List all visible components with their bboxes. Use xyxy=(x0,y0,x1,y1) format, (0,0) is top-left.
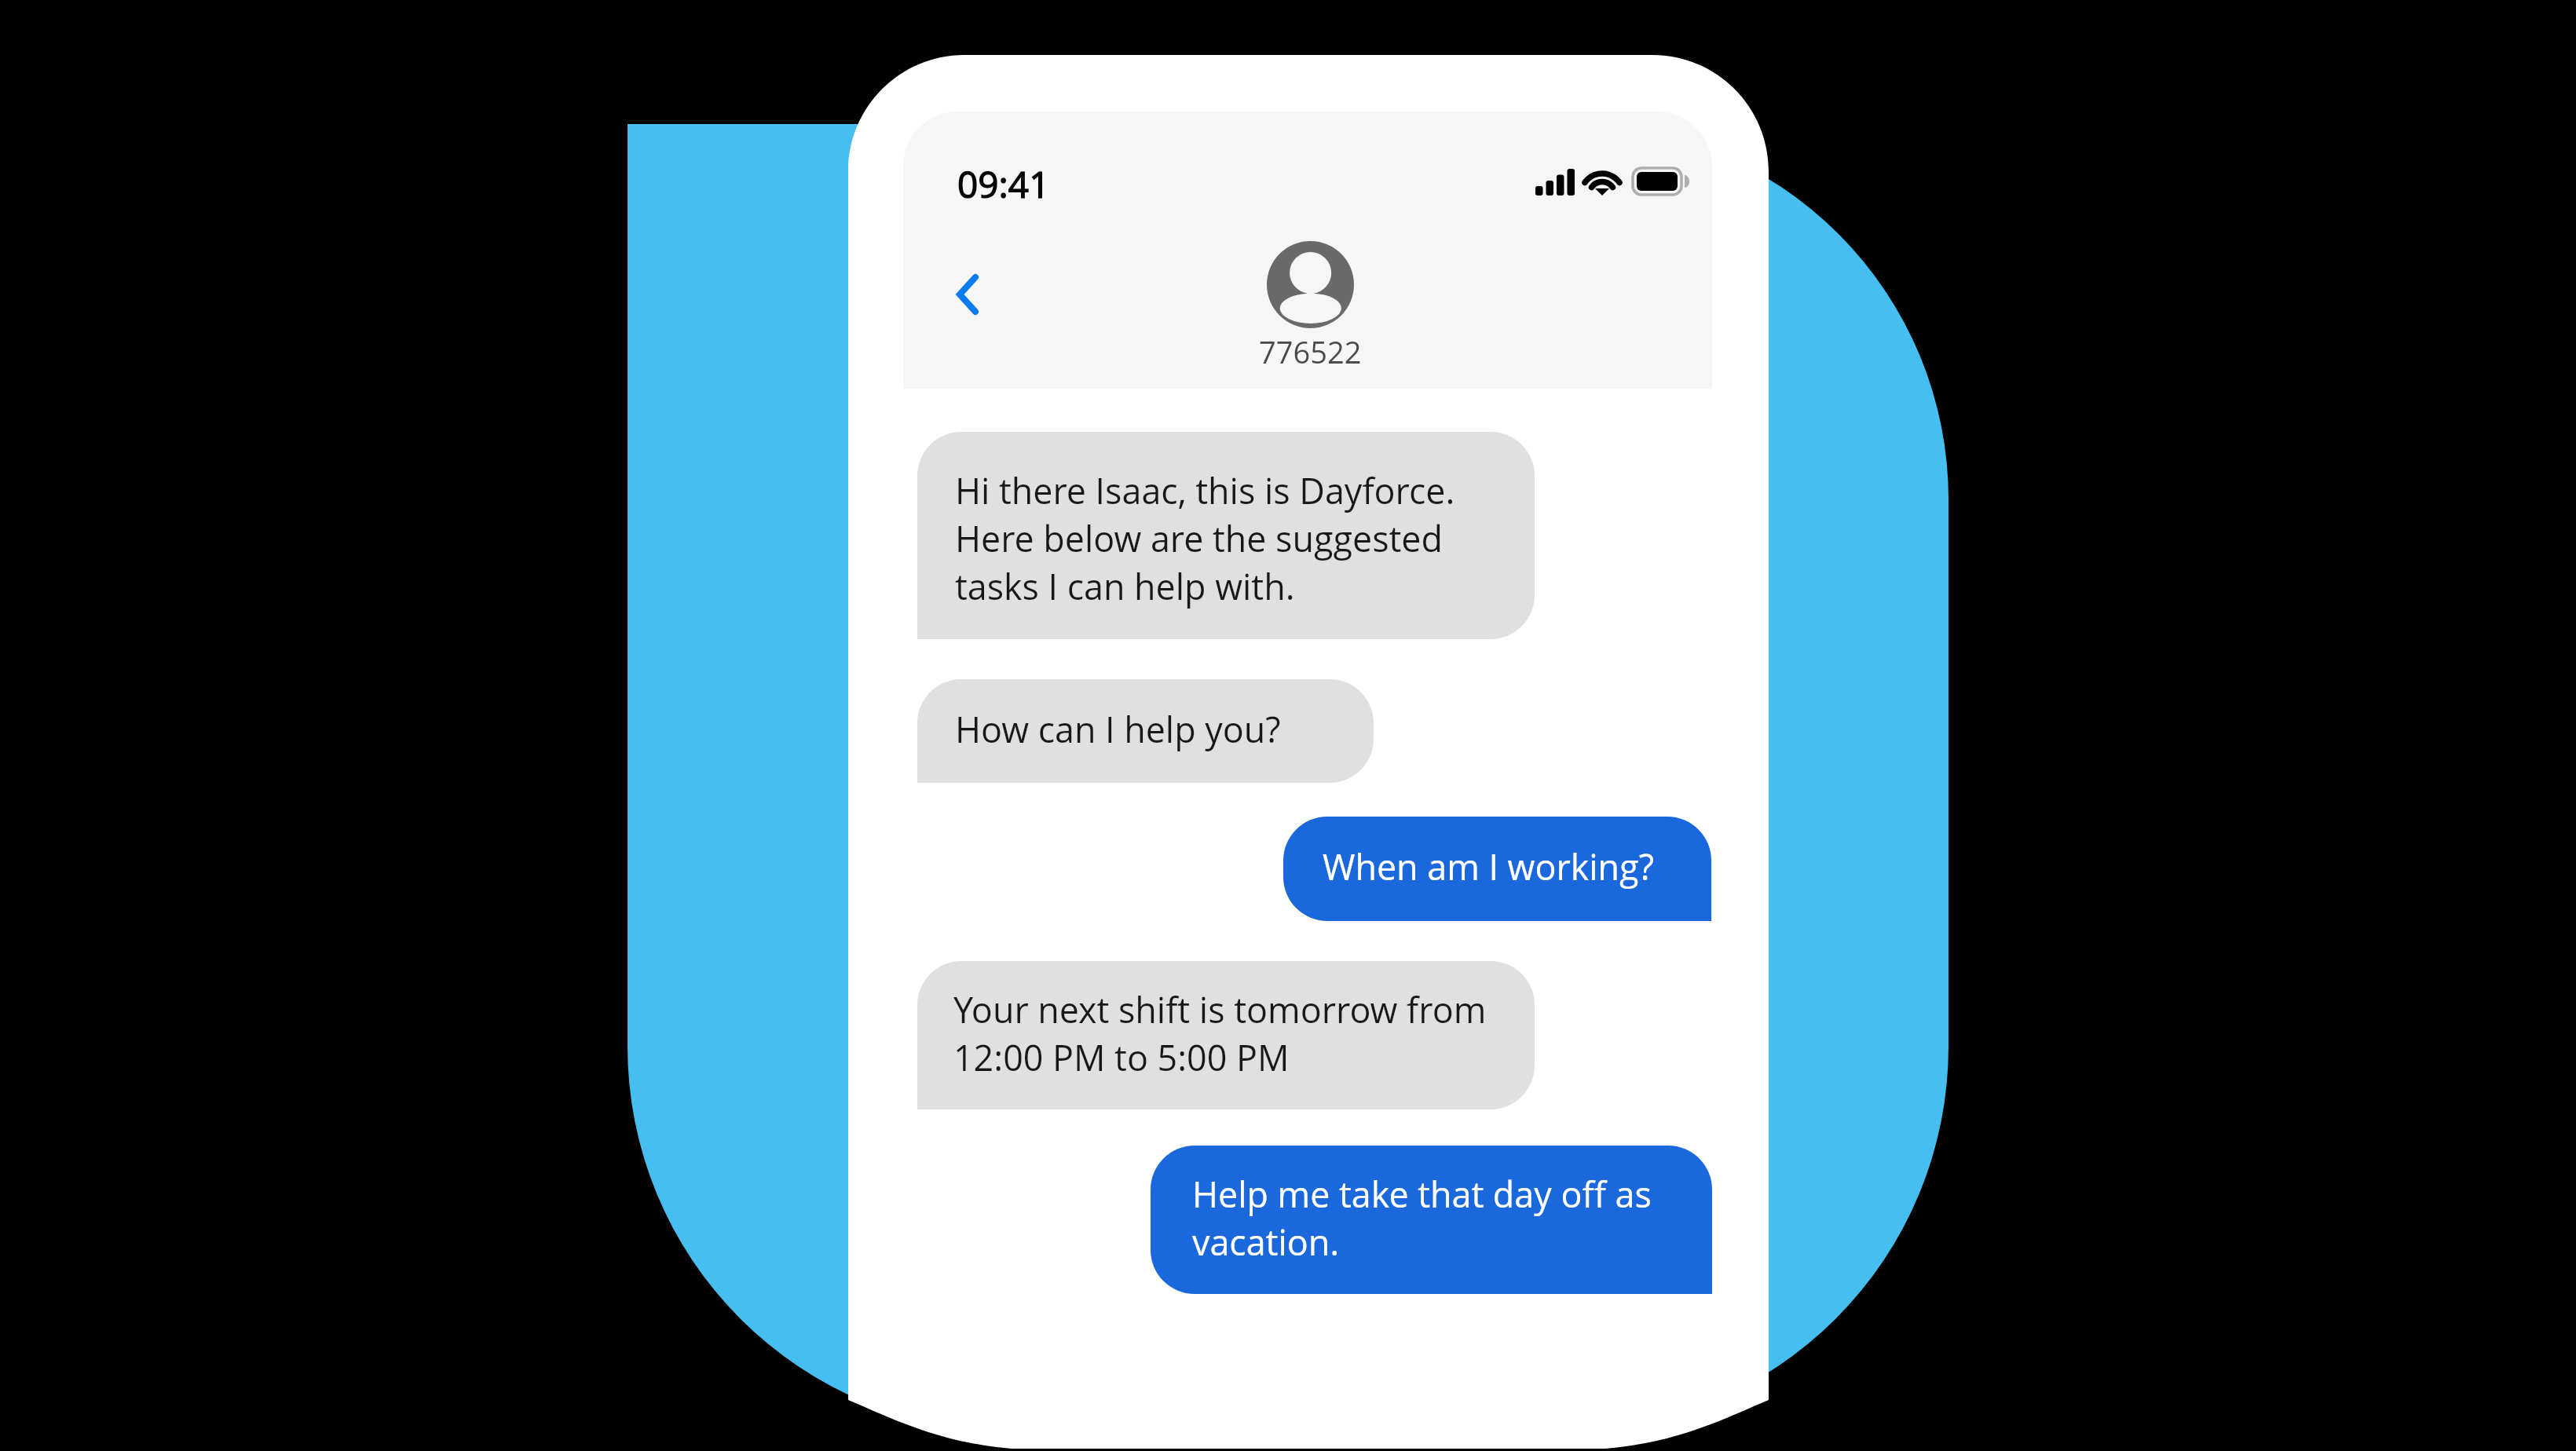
button[interactable]: Hi there Isaac, this is Dayforce. Here b… xyxy=(917,432,1535,639)
button[interactable]: When am I working? xyxy=(1283,817,1711,921)
staticText: How can I help you? xyxy=(955,705,1281,753)
button[interactable]: Back xyxy=(934,251,1001,338)
button[interactable]: Help me take that day off as vacation. xyxy=(1151,1146,1712,1294)
staticText: Help me take that day off as vacation. xyxy=(1192,1170,1652,1266)
button[interactable]: How can I help you? xyxy=(917,679,1374,783)
staticText: 776522 xyxy=(1259,331,1362,372)
staticText: Your next shift is tomorrow from 12:00 P… xyxy=(953,985,1487,1081)
staticText: 09:41 xyxy=(957,159,1050,209)
staticText: Hi there Isaac, this is Dayforce. Here b… xyxy=(955,466,1455,610)
staticText: When am I working? xyxy=(1323,842,1654,890)
button[interactable]: Your next shift is tomorrow from 12:00 P… xyxy=(917,961,1535,1109)
